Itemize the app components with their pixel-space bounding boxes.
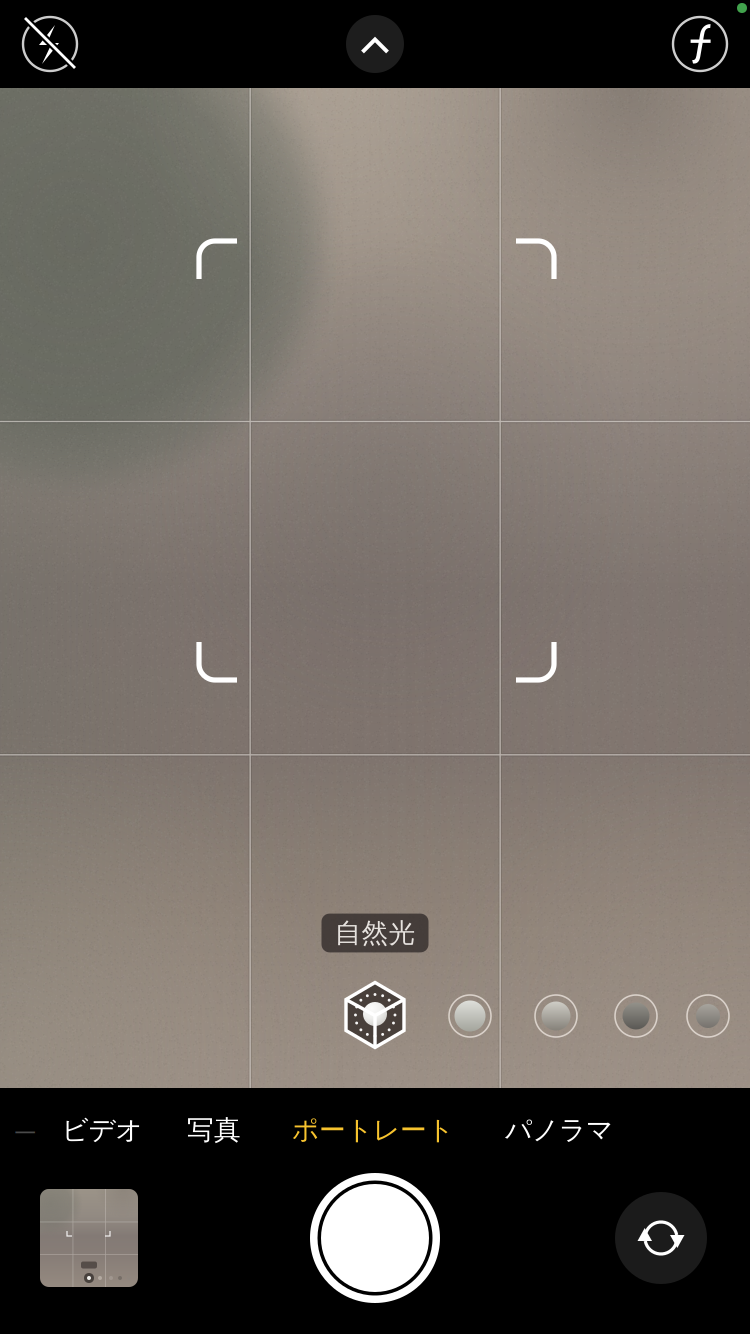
button[interactable]: ポートレート (292, 1114, 454, 1146)
button[interactable]: Natural Light (342, 979, 408, 1050)
button[interactable]: パノラマ (505, 1114, 613, 1146)
button[interactable]: Studio Light (448, 994, 492, 1038)
staticText: 写真 (187, 1114, 241, 1146)
button[interactable]: Flash off (19, 13, 81, 75)
staticText: ポートレート (292, 1114, 454, 1146)
button[interactable]: ビデオ (61, 1114, 142, 1146)
button[interactable]: 写真 (187, 1114, 241, 1146)
staticText: — (14, 1116, 35, 1144)
staticText: ビデオ (61, 1114, 142, 1146)
button[interactable]: Stage Light (614, 994, 658, 1038)
button[interactable]: Photographic styles (669, 13, 731, 75)
button[interactable]: Stage Light Mono (686, 994, 730, 1038)
staticText: 自然光 (334, 917, 415, 949)
staticText: パノラマ (505, 1114, 613, 1146)
button[interactable]: Take photo (309, 1172, 441, 1304)
button[interactable]: Contour Light (534, 994, 578, 1038)
button[interactable]: Switch camera (615, 1192, 707, 1284)
button[interactable]: Camera controls (345, 14, 405, 74)
button[interactable]: Photo library (40, 1189, 138, 1287)
